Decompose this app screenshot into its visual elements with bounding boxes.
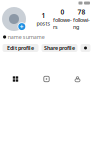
staticText: followers bbox=[53, 16, 72, 30]
staticText: Edit profile bbox=[7, 44, 34, 52]
staticText: Share profile bbox=[44, 44, 75, 52]
button[interactable]: 1 bbox=[34, 11, 53, 27]
staticText: 0 bbox=[60, 7, 64, 16]
button[interactable]: Discover people bbox=[80, 44, 90, 52]
button[interactable]: Share profile bbox=[41, 44, 77, 52]
button[interactable]: Reels bbox=[31, 75, 62, 83]
staticText: 1 bbox=[41, 11, 45, 20]
staticText: posts bbox=[36, 20, 50, 27]
staticText: following bbox=[73, 16, 90, 30]
staticText: name surname bbox=[8, 33, 45, 41]
button[interactable]: 78 bbox=[72, 7, 91, 30]
button[interactable]: Tagged bbox=[62, 75, 93, 83]
button[interactable]: 0 bbox=[53, 7, 72, 30]
button[interactable]: Posts bbox=[0, 75, 31, 83]
button[interactable]: Edit profile bbox=[2, 44, 38, 52]
staticText: + bbox=[20, 22, 24, 31]
staticText: 78 bbox=[77, 7, 85, 16]
